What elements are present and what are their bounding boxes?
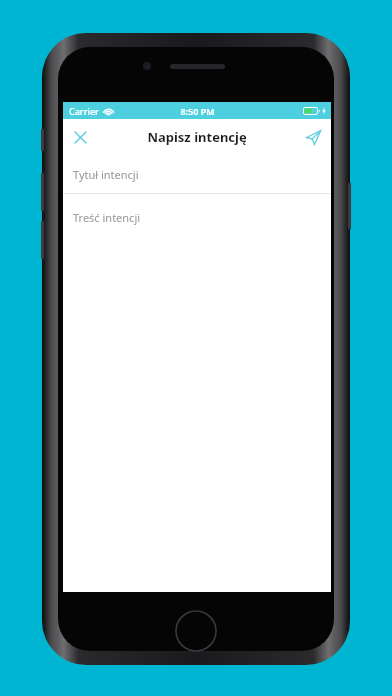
button[interactable]: Treść intencji [63,194,331,240]
button[interactable]: Send [301,125,325,149]
staticText: Napisz intencję [147,128,247,146]
staticText: 8:50 PM [180,105,215,117]
staticText: Tytuł intencji [73,167,139,182]
button[interactable]: Tytuł intencji [63,155,331,193]
staticText: Treść intencji [73,210,141,225]
button[interactable]: Close [69,126,91,148]
staticText: Carrier [69,105,99,117]
